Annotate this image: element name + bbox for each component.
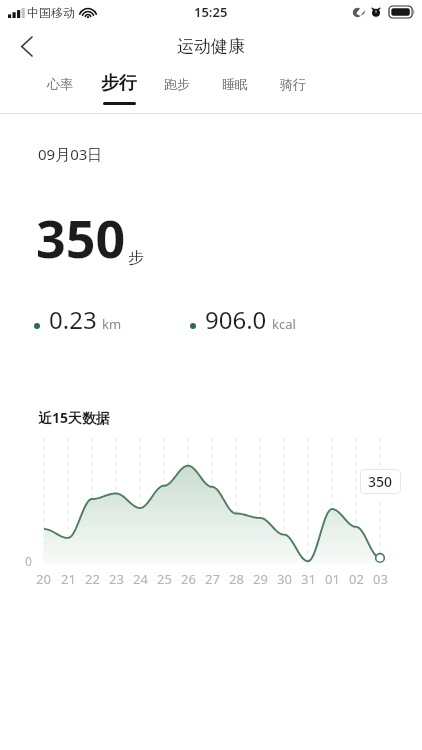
button[interactable]: 跑步 [148, 68, 206, 114]
staticText: 01 [325, 570, 340, 588]
staticText: 运动健康 [177, 36, 245, 57]
button[interactable]: 骑行 [264, 68, 322, 114]
staticText: 27 [205, 570, 220, 588]
staticText: 29 [253, 570, 268, 588]
staticText: kcal [272, 315, 296, 333]
button[interactable]: 步行 [89, 68, 148, 114]
staticText: 骑行 [280, 76, 306, 92]
staticText: 350 [368, 472, 393, 491]
staticText: 30 [277, 570, 292, 588]
staticText: 24 [133, 570, 148, 588]
staticText: 中国移动 [27, 5, 75, 20]
staticText: 31 [301, 570, 316, 588]
staticText: 心率 [47, 76, 73, 92]
staticText: 02 [349, 570, 364, 588]
staticText: 近15天数据 [38, 408, 111, 427]
staticText: 步 [128, 248, 144, 268]
staticText: 0 [25, 553, 32, 569]
button[interactable]: Back [4, 24, 48, 68]
staticText: 906.0 [205, 303, 267, 336]
staticText: 22 [85, 570, 100, 588]
button[interactable]: 睡眠 [206, 68, 264, 114]
staticText: 睡眠 [222, 76, 248, 92]
staticText: 03 [373, 570, 388, 588]
staticText: 步行 [101, 72, 137, 95]
staticText: 26 [181, 570, 196, 588]
staticText: 21 [61, 570, 76, 588]
staticText: 15:25 [194, 3, 228, 21]
button[interactable]: 心率 [30, 68, 89, 114]
button[interactable]: 350 [360, 469, 401, 499]
staticText: 23 [109, 570, 124, 588]
staticText: 20 [36, 570, 51, 588]
staticText: 0.23 [49, 303, 97, 336]
staticText: 350 [36, 202, 126, 273]
staticText: 28 [229, 570, 244, 588]
staticText: 跑步 [164, 76, 190, 92]
staticText: 25 [157, 570, 172, 588]
staticText: km [102, 315, 122, 333]
staticText: 09月03日 [38, 144, 103, 164]
